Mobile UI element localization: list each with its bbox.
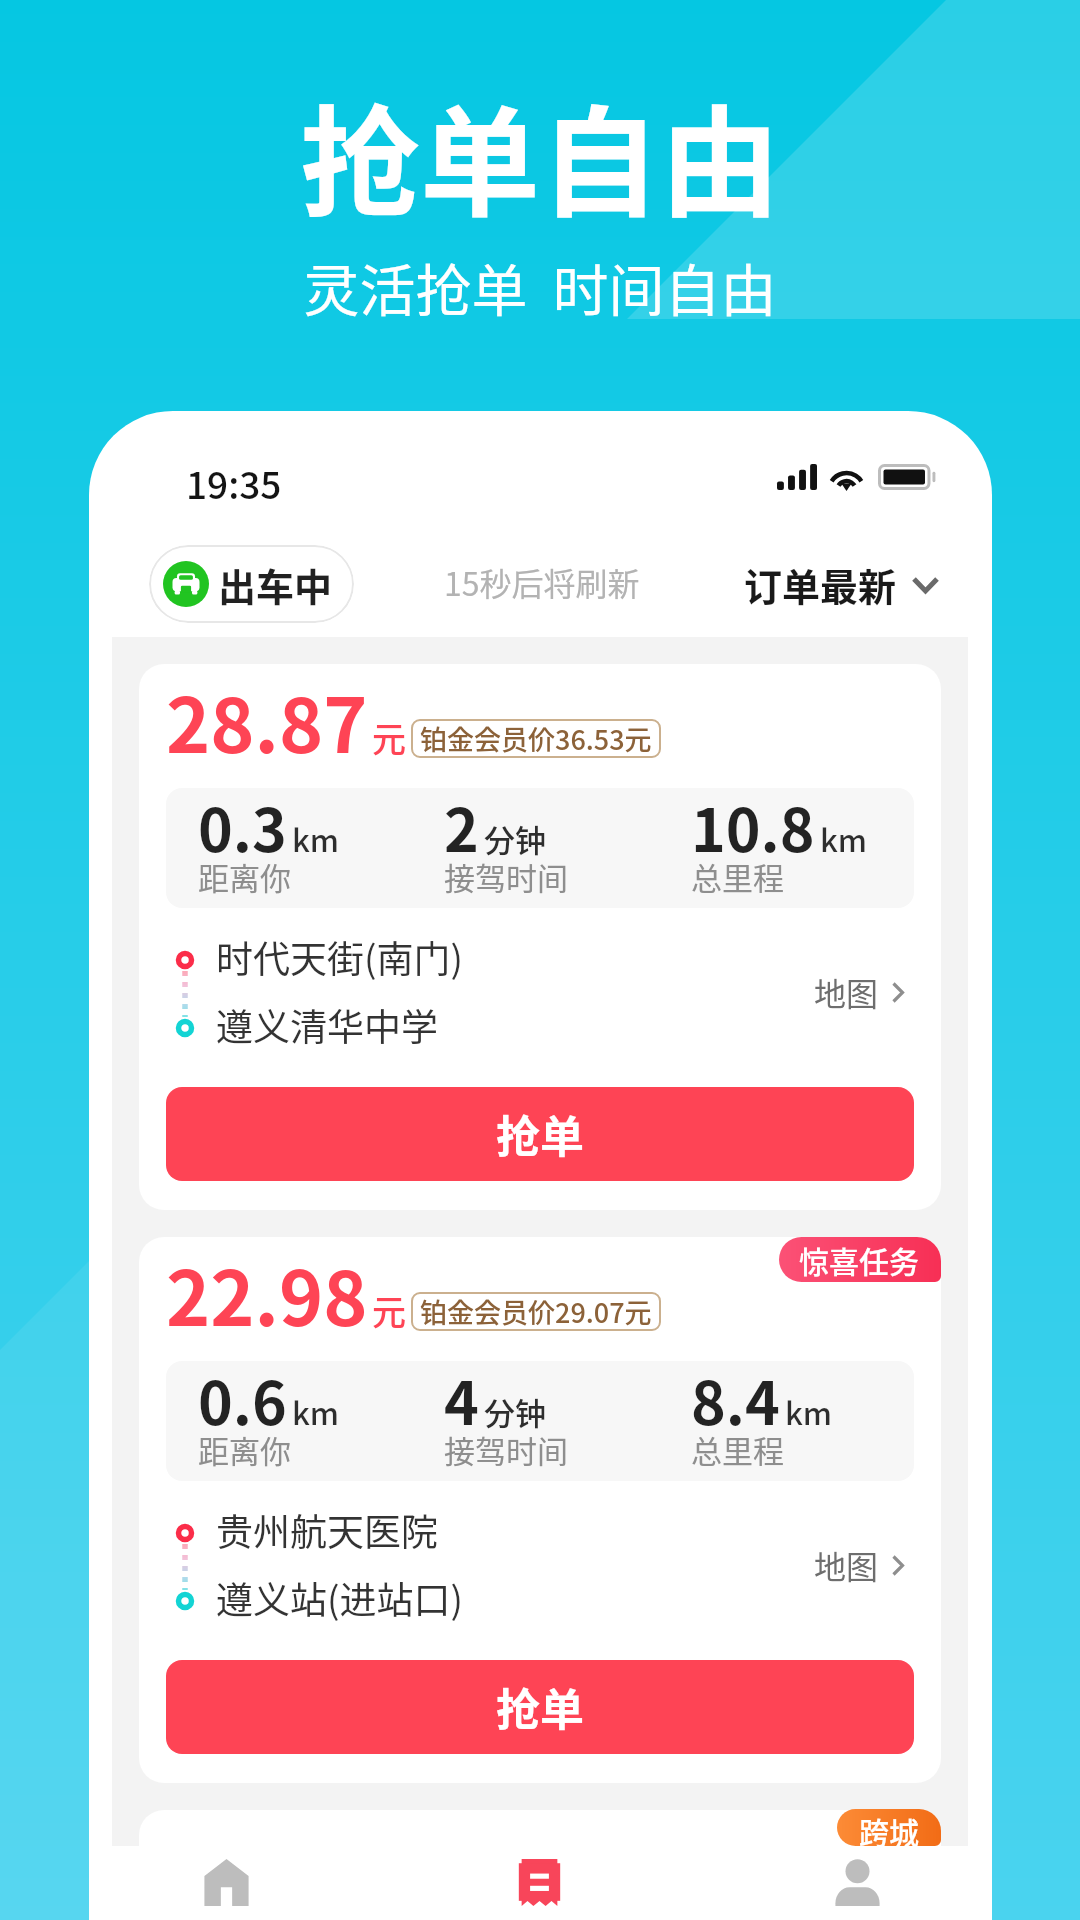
button[interactable]: 接单 bbox=[151, 1846, 301, 1920]
staticText: 元 bbox=[372, 1286, 406, 1335]
staticText: 距离你 bbox=[198, 854, 291, 899]
staticText: 8.4 bbox=[691, 1361, 780, 1442]
staticText: 元 bbox=[372, 713, 406, 762]
other: 我的订单 bbox=[516, 1859, 563, 1906]
staticText: 出车中 bbox=[218, 557, 333, 612]
staticText: 总里程 bbox=[691, 1427, 784, 1472]
button[interactable]: 地图 bbox=[814, 1542, 904, 1588]
other: 个人中心 bbox=[834, 1859, 881, 1906]
staticText: km bbox=[820, 816, 868, 861]
button[interactable]: 个人中心 bbox=[782, 1846, 932, 1920]
staticText: 10.8 bbox=[691, 788, 815, 869]
staticText: 接驾时间 bbox=[444, 854, 568, 899]
staticText: 19:35 bbox=[186, 456, 282, 510]
button[interactable] bbox=[139, 1237, 941, 1783]
button[interactable]: 出车中 bbox=[149, 545, 354, 623]
staticText: km bbox=[785, 1389, 833, 1434]
button[interactable] bbox=[139, 664, 941, 1210]
button[interactable]: 地图 bbox=[814, 969, 904, 1015]
staticText: 订单最新 bbox=[744, 557, 897, 612]
staticText: 抢单 bbox=[496, 1675, 584, 1739]
staticText: 跨城 bbox=[859, 1809, 919, 1846]
staticText: 0.6 bbox=[198, 1361, 287, 1442]
staticText: 遵义站(进站口) bbox=[216, 1571, 464, 1625]
staticText: 抢单 bbox=[496, 1102, 584, 1166]
staticText: 距离你 bbox=[198, 1427, 291, 1472]
staticText: 28.87 bbox=[166, 666, 368, 775]
button[interactable] bbox=[139, 1810, 941, 1920]
staticText: 15秒后将刷新 bbox=[444, 559, 640, 605]
button[interactable]: 抢单 bbox=[166, 1087, 914, 1181]
staticText: 灵活抢单 时间自由 bbox=[303, 246, 777, 327]
staticText: km bbox=[292, 1389, 340, 1434]
staticText: 抢单自由 bbox=[300, 68, 780, 242]
staticText: 0.3 bbox=[198, 788, 287, 869]
staticText: 2 bbox=[444, 788, 479, 869]
staticText: 惊喜任务 bbox=[799, 1238, 919, 1281]
staticText: km bbox=[292, 816, 340, 861]
staticText: 地图 bbox=[814, 969, 879, 1015]
button[interactable]: 抢单 bbox=[166, 1660, 914, 1754]
staticText: 铂金会员价29.07元 bbox=[420, 1292, 652, 1331]
staticText: 总里程 bbox=[691, 854, 784, 899]
other: 接单 bbox=[203, 1859, 250, 1906]
staticText: 4 bbox=[444, 1361, 479, 1442]
staticText: 贵州航天医院 bbox=[216, 1503, 438, 1557]
staticText: 遵义清华中学 bbox=[216, 998, 438, 1052]
staticText: 分钟 bbox=[484, 816, 546, 861]
staticText: 22.98 bbox=[166, 1239, 368, 1348]
staticText: 时代天街(南门) bbox=[216, 930, 464, 984]
staticText: 地图 bbox=[814, 1542, 879, 1588]
button[interactable]: 订单最新 bbox=[744, 557, 939, 612]
staticText: 铂金会员价36.53元 bbox=[420, 719, 652, 758]
staticText: 分钟 bbox=[484, 1389, 546, 1434]
staticText: 接驾时间 bbox=[444, 1427, 568, 1472]
button[interactable]: 我的订单 bbox=[464, 1846, 614, 1920]
